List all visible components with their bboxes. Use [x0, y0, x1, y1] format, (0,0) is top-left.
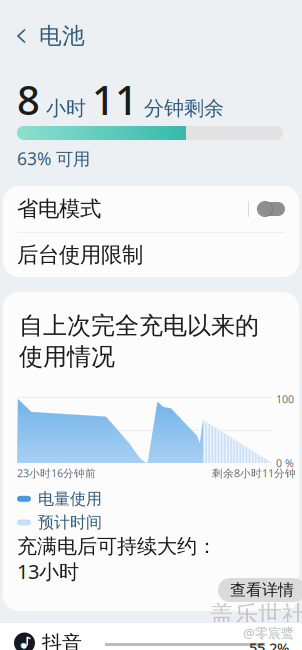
staticText: @零宸鹭	[243, 624, 294, 642]
button[interactable]: 查看详情	[218, 578, 302, 602]
staticText: 11	[92, 73, 138, 126]
staticText: 8	[17, 73, 40, 126]
staticText: 0 %	[276, 456, 294, 470]
staticText: 电池	[39, 22, 85, 50]
button[interactable]: 抖音	[0, 630, 96, 650]
staticText: 盖乐世社区	[210, 600, 302, 629]
staticText: 查看详情	[230, 580, 294, 600]
staticText: 预计时间	[38, 513, 102, 532]
staticText: 分钟剩余	[138, 96, 224, 121]
staticText: 自上次完全充电以来的	[19, 311, 259, 340]
staticText: 后台使用限制	[17, 242, 143, 268]
staticText: 23小时16分钟前	[17, 466, 96, 480]
button[interactable]: 省电模式	[3, 186, 299, 232]
button[interactable]: 后台使用限制	[3, 233, 299, 277]
staticText: 充满电后可持续大约：	[17, 534, 217, 559]
staticText: 小时	[40, 96, 92, 121]
staticText: 使用情况	[19, 342, 115, 371]
staticText: 13小时	[17, 558, 79, 585]
staticText: 55 2%	[249, 638, 289, 650]
staticText: 100	[276, 392, 294, 406]
staticText: 抖音	[42, 631, 82, 650]
staticText: 63% 可用	[17, 147, 90, 170]
staticText: 电量使用	[38, 489, 102, 509]
button[interactable]: 电池	[0, 16, 99, 56]
staticText: 剩余8小时11分钟	[212, 466, 296, 480]
staticText: 省电模式	[17, 196, 101, 222]
